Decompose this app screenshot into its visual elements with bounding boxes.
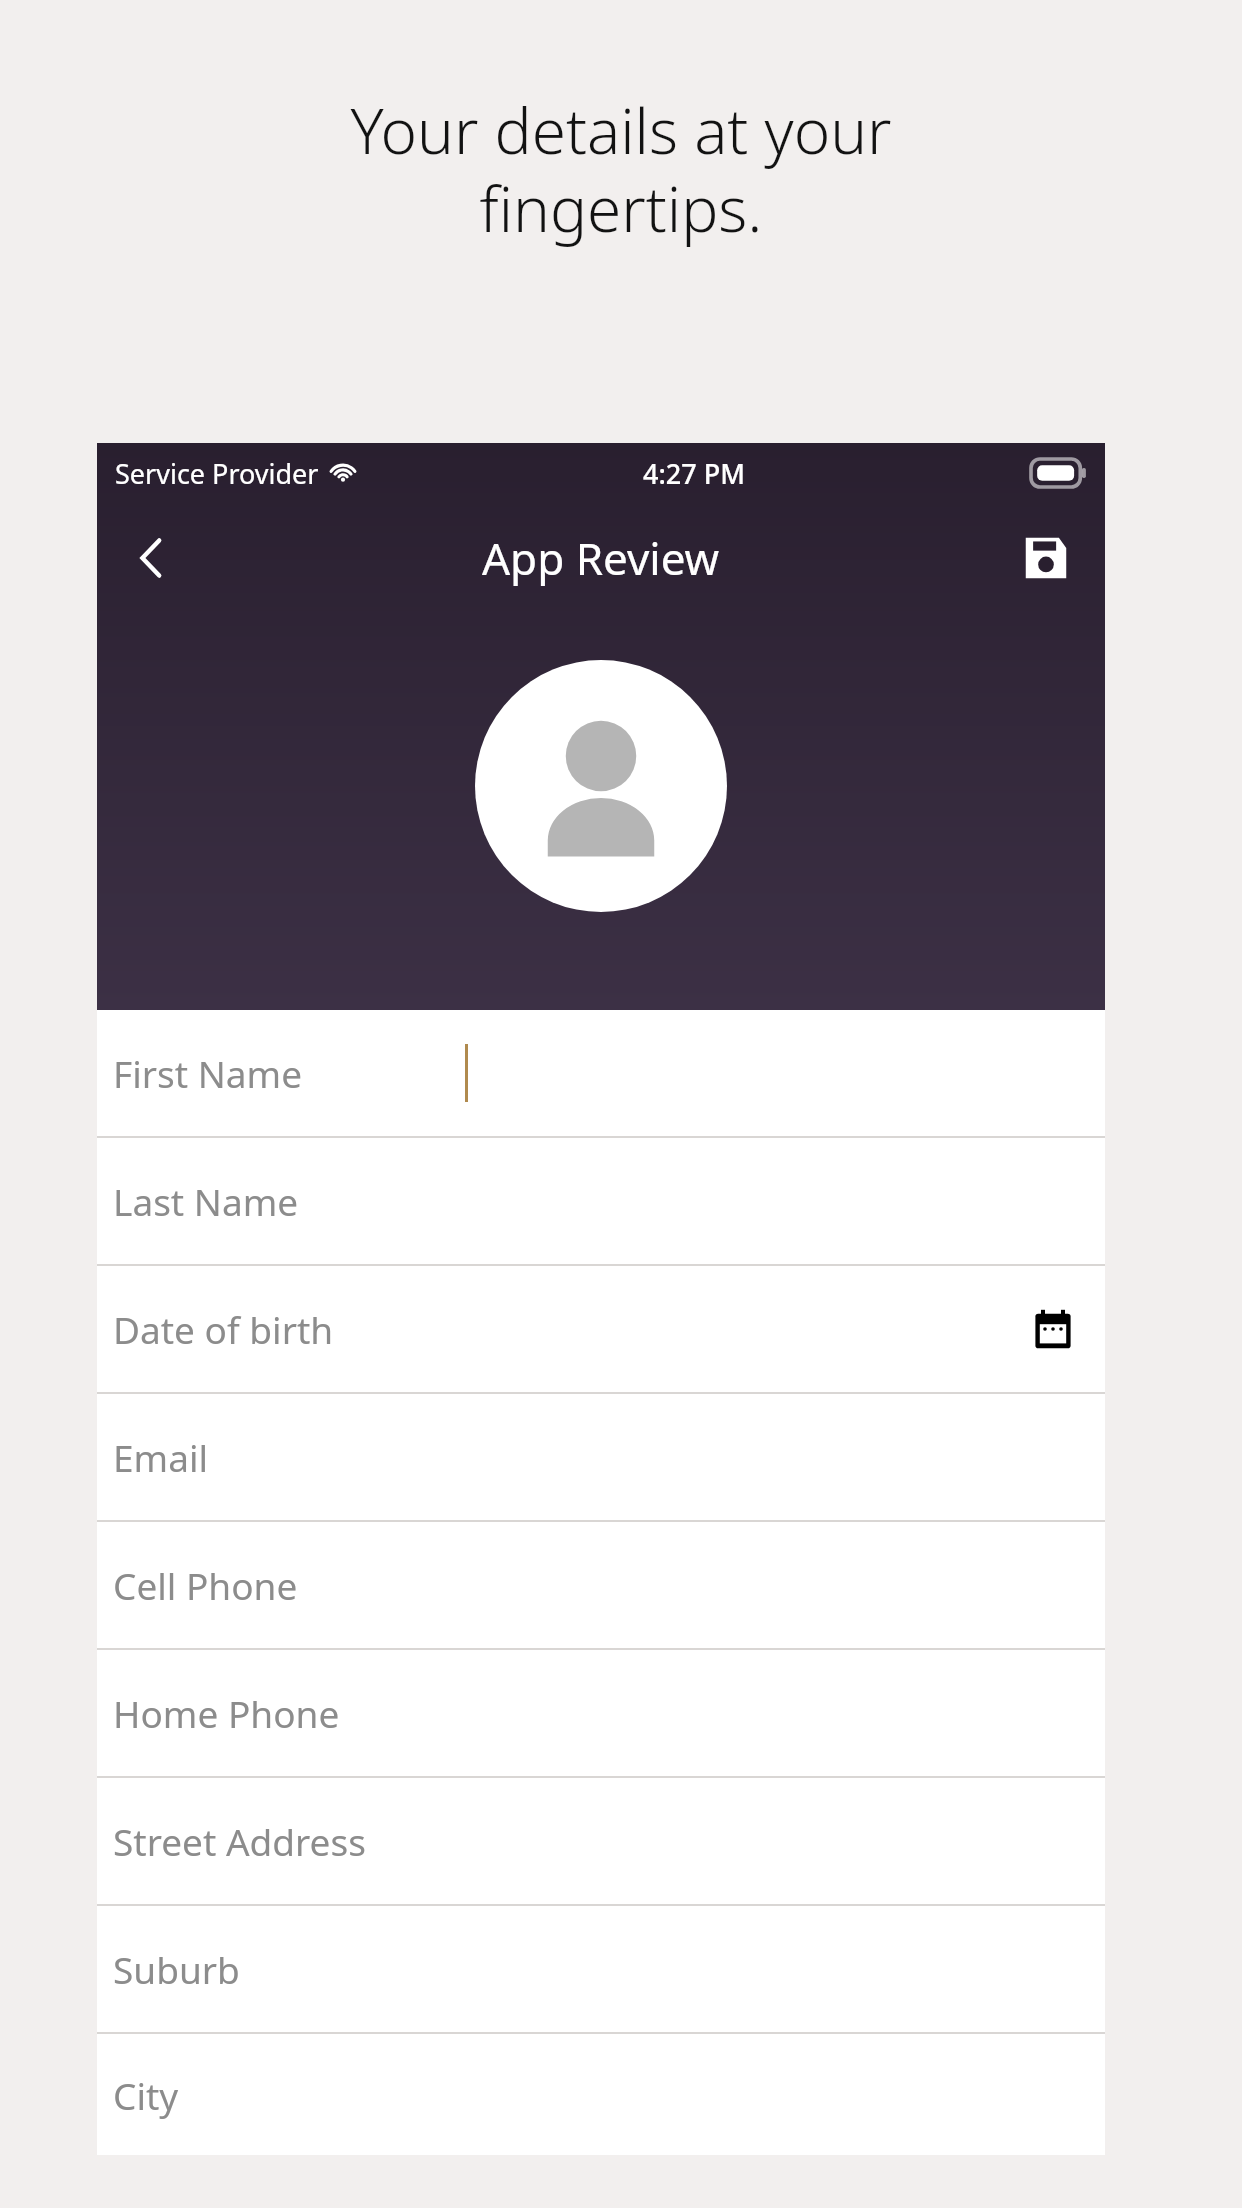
staticText: City	[113, 2070, 179, 2120]
button[interactable]: Cell Phone	[97, 1522, 1105, 1650]
staticText: Date of birth	[113, 1304, 334, 1354]
other: Pick date	[1029, 1305, 1077, 1353]
staticText: Street Address	[113, 1816, 366, 1866]
staticText: Home Phone	[113, 1688, 340, 1738]
staticText: Last Name	[113, 1176, 299, 1226]
staticText: First Name	[113, 1048, 303, 1098]
staticText: 4:27 PM	[643, 455, 745, 492]
button[interactable]: Save	[1007, 519, 1085, 597]
button[interactable]: Email	[97, 1394, 1105, 1522]
staticText: Cell Phone	[113, 1560, 298, 1610]
button[interactable]: Back	[113, 519, 191, 597]
button[interactable]: Home Phone	[97, 1650, 1105, 1778]
staticText: Suburb	[113, 1944, 240, 1994]
staticText: App Review	[482, 528, 720, 588]
button[interactable]: Last Name	[97, 1138, 1105, 1266]
button[interactable]: Date of birth	[97, 1266, 1105, 1394]
staticText: Your details at your fingertips.	[56, 88, 1186, 250]
button[interactable]: Street Address	[97, 1778, 1105, 1906]
button[interactable]: First Name	[97, 1010, 1105, 1138]
staticText: Service Provider	[115, 455, 319, 492]
staticText: Email	[113, 1432, 209, 1482]
button[interactable]: Suburb	[97, 1906, 1105, 2034]
button[interactable]: City	[97, 2034, 1105, 2155]
